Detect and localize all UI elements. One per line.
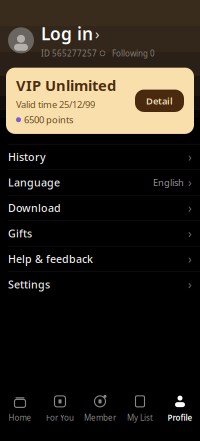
- button[interactable]: Download: [0, 195, 200, 221]
- button[interactable]: History: [0, 144, 200, 170]
- staticText: Following 0: [112, 48, 155, 59]
- staticText: Profile: [167, 412, 192, 423]
- staticText: Help & feedback: [8, 252, 93, 266]
- staticText: ›: [188, 149, 192, 165]
- button[interactable]: Member: [80, 392, 120, 425]
- staticText: ID 565277257: [41, 48, 97, 59]
- staticText: Download: [8, 201, 61, 215]
- staticText: Log in: [41, 22, 93, 45]
- staticText: 6500 points: [24, 113, 73, 126]
- button[interactable]: My List: [120, 392, 160, 425]
- staticText: Member: [84, 412, 116, 423]
- staticText: Gifts: [8, 226, 32, 240]
- staticText: Settings: [8, 277, 50, 291]
- staticText: Detail: [146, 95, 173, 107]
- staticText: ›: [95, 24, 100, 43]
- staticText: VIP Unlimited: [16, 76, 116, 95]
- staticText: For You: [46, 412, 74, 423]
- button[interactable]: Profile: [160, 392, 200, 425]
- staticText: ›: [188, 225, 192, 241]
- button[interactable]: Settings: [0, 272, 200, 297]
- staticText: English: [153, 176, 184, 189]
- staticText: Valid time 25/12/99: [16, 98, 95, 110]
- button[interactable]: Language: [0, 170, 200, 195]
- button[interactable]: Log in: [0, 0, 200, 68]
- button[interactable]: Home: [0, 392, 40, 425]
- staticText: My List: [127, 412, 153, 423]
- button[interactable]: For You: [40, 392, 80, 425]
- button[interactable]: Detail: [135, 90, 184, 112]
- staticText: Language: [8, 175, 60, 189]
- button[interactable]: Help & feedback: [0, 246, 200, 272]
- staticText: History: [8, 150, 46, 164]
- staticText: ›: [188, 200, 192, 216]
- staticText: ›: [188, 276, 192, 292]
- staticText: ›: [188, 174, 192, 190]
- staticText: ›: [188, 251, 192, 267]
- staticText: Home: [8, 412, 31, 423]
- button[interactable]: Gifts: [0, 221, 200, 246]
